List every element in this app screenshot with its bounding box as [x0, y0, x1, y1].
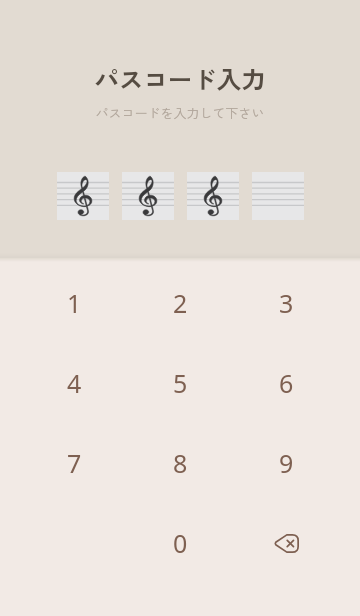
button[interactable]: 1: [21, 263, 127, 343]
staticText: 2: [173, 286, 188, 320]
staticText: 4: [67, 366, 82, 400]
staticText: 5: [173, 366, 188, 400]
staticText: パスコード入力: [0, 61, 360, 96]
button[interactable]: 9: [233, 423, 339, 503]
button[interactable]: 3: [233, 263, 339, 343]
button[interactable]: 6: [233, 343, 339, 423]
other: Delete: [274, 534, 299, 553]
staticText: 6: [279, 366, 294, 400]
staticText: パスコードを入力して下さい: [0, 103, 360, 122]
staticText: 1: [67, 286, 82, 320]
button[interactable]: 7: [21, 423, 127, 503]
button[interactable]: 2: [127, 263, 233, 343]
button[interactable]: 4: [21, 343, 127, 423]
staticText: 9: [279, 446, 294, 480]
button[interactable]: 0: [127, 503, 233, 583]
staticText: 7: [67, 446, 82, 480]
staticText: 3: [279, 286, 294, 320]
button[interactable]: Delete: [233, 503, 339, 583]
button[interactable]: 5: [127, 343, 233, 423]
staticText: 0: [173, 526, 188, 560]
button[interactable]: 8: [127, 423, 233, 503]
staticText: 8: [173, 446, 188, 480]
